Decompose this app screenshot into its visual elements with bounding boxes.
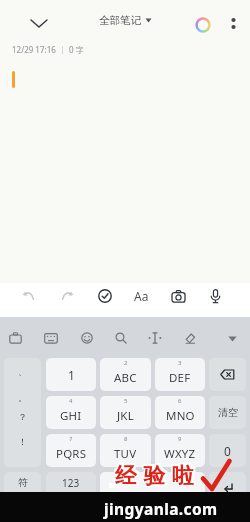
staticText: 2 xyxy=(124,359,128,367)
staticText: 符 xyxy=(18,476,28,489)
button[interactable]: 4 xyxy=(46,396,96,429)
staticText: TUV xyxy=(114,446,137,462)
button[interactable] xyxy=(81,332,93,344)
button[interactable] xyxy=(28,16,50,32)
staticText: MNO xyxy=(166,408,195,424)
staticText: ！ xyxy=(18,436,27,447)
button[interactable]: 9 xyxy=(155,434,205,467)
staticText: ABC xyxy=(114,370,137,386)
staticText: ？ xyxy=(18,411,27,422)
staticText: 5 xyxy=(124,397,128,405)
button[interactable]: 123 xyxy=(46,472,96,505)
staticText: GHI xyxy=(60,408,82,424)
button[interactable] xyxy=(44,333,58,344)
staticText: JKL xyxy=(117,408,134,424)
button[interactable] xyxy=(228,15,239,33)
button[interactable] xyxy=(22,290,36,302)
button[interactable]: 1 xyxy=(46,358,96,391)
staticText: 0 字 xyxy=(69,44,84,55)
staticText: 清空 xyxy=(218,406,238,419)
staticText: Aa xyxy=(134,288,149,304)
button[interactable]: 3 xyxy=(155,358,205,391)
button[interactable]: 、 xyxy=(4,358,41,467)
staticText: 经验啦 xyxy=(115,462,201,489)
button[interactable] xyxy=(209,289,222,304)
staticText: 4 xyxy=(69,397,73,405)
button[interactable] xyxy=(115,332,127,344)
staticText: DEF xyxy=(169,370,191,386)
staticText: 9 xyxy=(178,435,182,443)
staticText: 8 xyxy=(124,435,128,443)
button[interactable] xyxy=(209,358,246,391)
button[interactable]: 5 xyxy=(100,396,151,429)
staticText: 经验啦 xyxy=(117,460,203,487)
button[interactable]: 0 xyxy=(209,434,246,467)
button[interactable]: Aa xyxy=(132,288,150,304)
staticText: 3 xyxy=(178,359,182,367)
button[interactable] xyxy=(209,472,246,505)
staticText: 全部笔记 xyxy=(99,14,141,27)
button[interactable] xyxy=(195,17,211,33)
button[interactable]: 6 xyxy=(155,396,205,429)
staticText: 12/29 17:16 xyxy=(12,44,56,55)
staticText: 经验啦 xyxy=(117,463,203,490)
staticText: 经验啦 xyxy=(114,460,200,487)
button[interactable] xyxy=(9,332,22,344)
button[interactable] xyxy=(148,332,162,344)
button[interactable]: 清空 xyxy=(209,396,246,429)
staticText: 。 xyxy=(18,392,27,403)
button[interactable] xyxy=(100,472,205,505)
staticText: PQRS xyxy=(56,446,87,462)
staticText: 7 xyxy=(69,435,73,443)
button[interactable]: 7 xyxy=(46,434,96,467)
staticText: 0 xyxy=(224,443,231,459)
button[interactable]: 8 xyxy=(100,434,151,467)
staticText: WXYZ xyxy=(164,446,196,462)
staticText: 123 xyxy=(62,476,80,490)
button[interactable]: 符 xyxy=(4,472,41,505)
staticText: 1 xyxy=(68,367,75,383)
button[interactable] xyxy=(60,290,74,302)
staticText: 6 xyxy=(178,397,182,405)
staticText: jingyanla.com xyxy=(104,498,218,519)
button[interactable]: 全部笔记 xyxy=(99,14,152,27)
button[interactable]: 2 xyxy=(100,358,151,391)
staticText: 经验啦 xyxy=(114,463,200,490)
button[interactable] xyxy=(184,332,196,344)
button[interactable] xyxy=(98,289,112,303)
button[interactable] xyxy=(171,290,186,303)
button[interactable] xyxy=(227,335,238,343)
staticText: 、 xyxy=(18,366,27,377)
